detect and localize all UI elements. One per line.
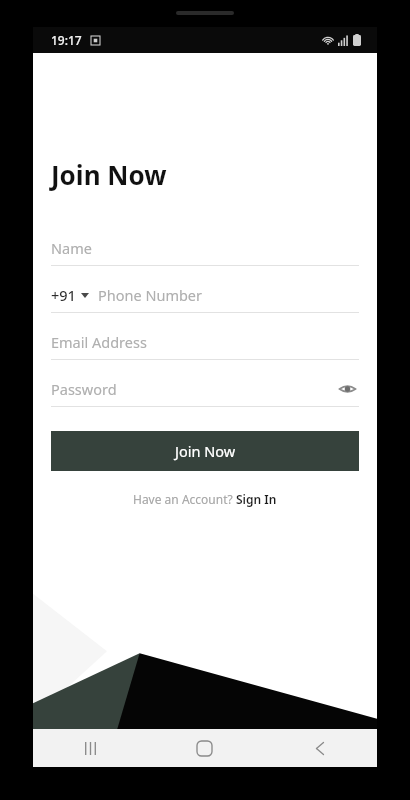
staticText: Join Now bbox=[51, 157, 167, 192]
staticText: Join Now bbox=[175, 441, 236, 461]
staticText: Password bbox=[51, 379, 335, 399]
staticText: Email Address bbox=[51, 332, 147, 352]
button[interactable]: Join Now bbox=[51, 431, 359, 471]
staticText: Phone Number bbox=[98, 285, 203, 305]
staticText: 19:17 bbox=[51, 32, 82, 48]
button[interactable]: Back bbox=[262, 729, 377, 767]
staticText: Have an Account? bbox=[133, 491, 236, 507]
button[interactable]: Show password bbox=[335, 377, 359, 401]
staticText: Name bbox=[51, 238, 92, 258]
button[interactable]: Home bbox=[147, 729, 262, 767]
staticText: Sign In bbox=[236, 491, 277, 507]
staticText: +91 bbox=[51, 285, 76, 305]
button[interactable]: Sign In bbox=[236, 491, 277, 507]
button[interactable]: Recent apps bbox=[33, 729, 147, 767]
